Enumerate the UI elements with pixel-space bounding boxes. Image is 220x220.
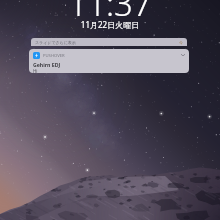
staticText: 11月22日火曜日 bbox=[0, 19, 220, 30]
staticText: 11:37 bbox=[0, 0, 220, 26]
staticText: Gehirn EDJ bbox=[33, 61, 61, 68]
button[interactable]: スライドでさらに表示 bbox=[31, 38, 187, 46]
staticText: Hi bbox=[33, 68, 38, 73]
staticText: PUSHOVER bbox=[43, 53, 65, 59]
staticText: 今 bbox=[179, 40, 183, 45]
staticText: スライドでさらに表示 bbox=[35, 40, 76, 45]
other: Expand notification bbox=[181, 53, 185, 57]
button[interactable]: PUSHOVER bbox=[29, 49, 189, 73]
